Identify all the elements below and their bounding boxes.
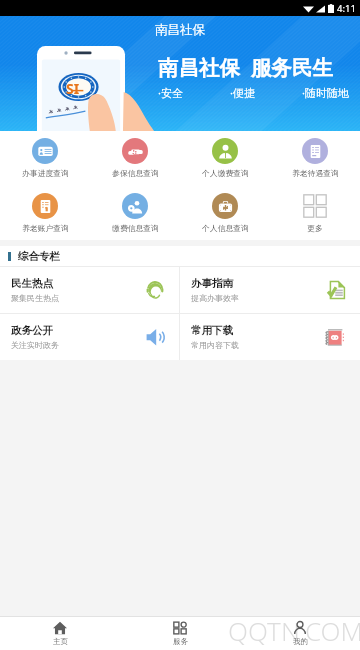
staticText: 我的 (293, 637, 308, 646)
staticText: 办事进度查询 (22, 168, 69, 178)
staticText: 政务公开 (11, 324, 53, 337)
staticText: 办事指南 (191, 277, 233, 290)
button[interactable]: 办事进度查询 (0, 131, 90, 187)
staticText: 常用内容下载 (191, 340, 239, 350)
button[interactable]: 常用下载 (180, 314, 360, 360)
staticText: 综合专栏 (18, 250, 60, 263)
staticText: 养老待遇查询 (292, 168, 339, 178)
staticText: ·随时随地 (302, 85, 349, 100)
staticText: 参保信息查询 (112, 168, 159, 178)
button[interactable]: 主页 (0, 617, 120, 650)
button[interactable]: 缴费信息查询 (90, 187, 180, 240)
button[interactable]: 我的 (240, 617, 360, 650)
staticText: 个人缴费查询 (202, 168, 249, 178)
staticText: 更多 (307, 223, 323, 233)
staticText: 缴费信息查询 (112, 223, 159, 233)
staticText: 服务 (173, 637, 188, 646)
staticText: 关注实时政务 (11, 340, 59, 350)
button[interactable]: 民生热点 (0, 267, 179, 313)
staticText: 南昌社保 (155, 22, 205, 38)
staticText: 4:11 (337, 2, 356, 15)
staticText: QQTN.COM (228, 613, 360, 648)
staticText: 聚集民生热点 (11, 293, 59, 303)
button[interactable]: 参保信息查询 (90, 131, 180, 187)
staticText: 养老账户查询 (22, 223, 69, 233)
button[interactable]: 个人信息查询 (180, 187, 270, 240)
staticText: 南昌社保 服务民生 (158, 53, 333, 81)
button[interactable]: 养老账户查询 (0, 187, 90, 240)
staticText: 主页 (53, 637, 68, 646)
staticText: 个人信息查询 (202, 223, 249, 233)
button[interactable]: 办事指南 (180, 267, 360, 313)
staticText: SI (66, 79, 80, 98)
button[interactable]: 政务公开 (0, 314, 179, 360)
staticText: 民生热点 (11, 277, 53, 290)
staticText: 常用下载 (191, 324, 233, 337)
staticText: ·便捷 (230, 85, 255, 100)
staticText: 提高办事效率 (191, 293, 239, 303)
button[interactable]: 个人缴费查询 (180, 131, 270, 187)
button[interactable]: 更多 (270, 187, 360, 240)
staticText: ·安全 (158, 85, 183, 100)
button[interactable]: 养老待遇查询 (270, 131, 360, 187)
button[interactable]: 服务 (120, 617, 240, 650)
